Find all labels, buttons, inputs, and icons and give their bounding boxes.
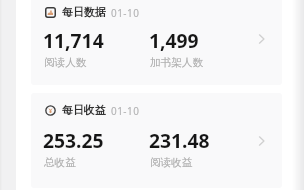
staticText: 阅读收益 <box>150 156 193 169</box>
staticText: 11,714 <box>43 27 104 53</box>
button[interactable] <box>31 0 282 85</box>
staticText: 01-10 <box>111 104 140 118</box>
button[interactable]: 查看详情 <box>249 129 273 153</box>
staticText: 01-10 <box>111 6 140 20</box>
staticText: 总收益 <box>44 156 76 169</box>
staticText: 1,499 <box>149 27 199 53</box>
staticText: 231.48 <box>149 127 210 153</box>
staticText: 每日收益 <box>62 104 106 118</box>
staticText: 加书架人数 <box>150 56 203 69</box>
staticText: 每日数据 <box>62 6 106 20</box>
button[interactable]: 查看详情 <box>249 27 273 51</box>
staticText: 阅读人数 <box>44 56 87 69</box>
button[interactable] <box>31 93 282 188</box>
staticText: 253.25 <box>43 127 104 153</box>
